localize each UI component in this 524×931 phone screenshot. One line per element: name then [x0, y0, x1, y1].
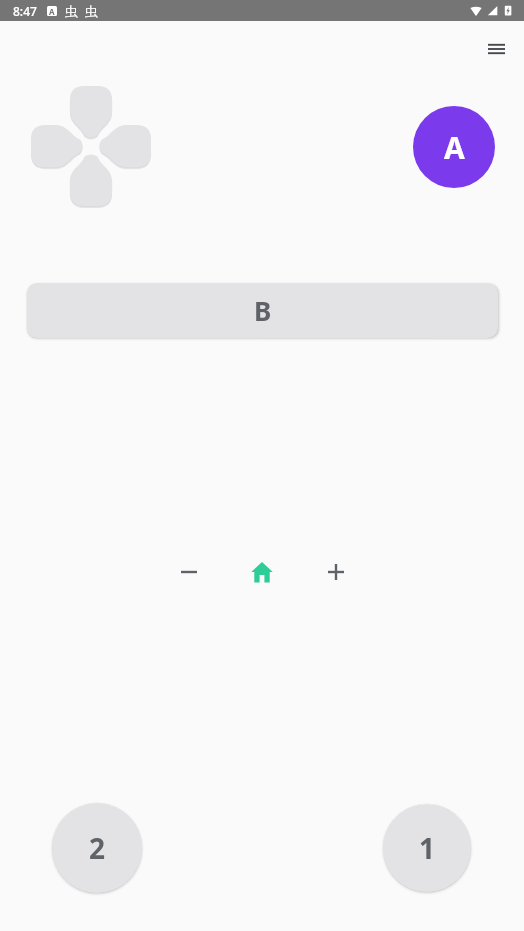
- button[interactable]: Direction pad: [31, 86, 151, 206]
- button[interactable]: B: [27, 283, 498, 338]
- staticText: 8:47: [13, 3, 37, 19]
- button[interactable]: 2: [52, 803, 142, 893]
- staticText: 2: [89, 829, 106, 867]
- button[interactable]: Increase: [312, 548, 360, 596]
- button[interactable]: Decrease: [165, 548, 213, 596]
- button[interactable]: Menu: [472, 25, 520, 73]
- staticText: 虫: [65, 3, 78, 19]
- staticText: 虫: [85, 3, 98, 19]
- staticText: A: [49, 6, 55, 16]
- staticText: A: [444, 127, 465, 168]
- button[interactable]: A: [413, 106, 495, 188]
- button[interactable]: Home: [238, 548, 286, 596]
- staticText: B: [254, 293, 272, 328]
- staticText: 1: [419, 829, 436, 867]
- button[interactable]: 1: [383, 804, 471, 892]
